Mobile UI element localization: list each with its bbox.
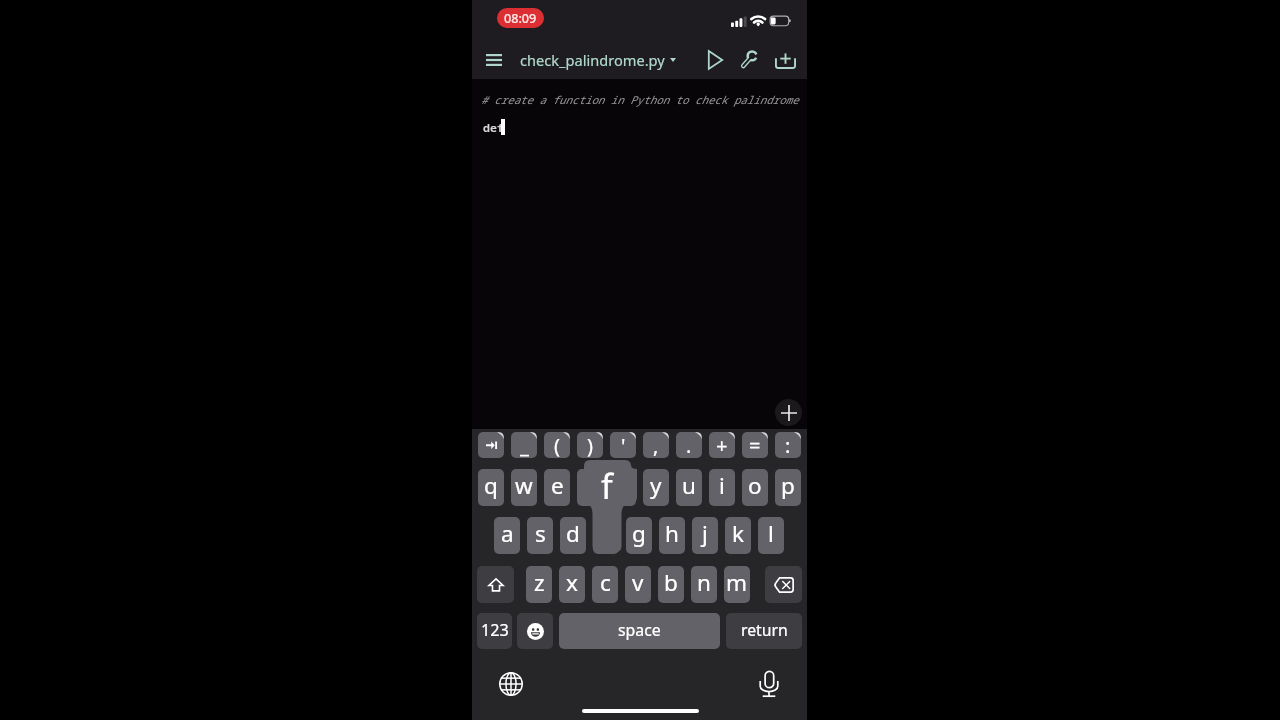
button[interactable]: :	[775, 432, 801, 458]
button[interactable]: y	[643, 469, 669, 506]
button[interactable]: space	[559, 613, 720, 649]
staticText: (	[554, 432, 560, 458]
button[interactable]: d	[560, 517, 586, 554]
button[interactable]: (	[544, 432, 570, 458]
staticText: f	[601, 463, 613, 509]
button[interactable]: f	[593, 517, 619, 554]
button[interactable]: )	[577, 432, 603, 458]
button[interactable]: =	[742, 432, 768, 458]
staticText: '	[621, 432, 626, 458]
button[interactable]: Voice input	[756, 671, 782, 697]
staticText: 08:09	[504, 10, 537, 27]
staticText: e	[551, 470, 564, 501]
button[interactable]: Tools	[735, 46, 763, 74]
staticText: c	[600, 567, 611, 598]
staticText: k	[732, 518, 745, 549]
button[interactable]: c	[592, 566, 618, 603]
staticText: i	[719, 470, 725, 501]
staticText: a	[501, 518, 514, 549]
staticText: v	[632, 567, 644, 598]
button[interactable]: Shift	[477, 566, 514, 603]
button[interactable]: a	[494, 517, 520, 554]
button[interactable]: k	[725, 517, 751, 554]
staticText: .	[686, 432, 692, 458]
staticText: n	[697, 567, 711, 598]
staticText: g	[632, 518, 646, 549]
staticText: # create a function in Python to check p…	[481, 92, 799, 107]
button[interactable]: p	[775, 469, 801, 506]
button[interactable]: x	[559, 566, 585, 603]
staticText: +	[716, 432, 728, 458]
staticText: =	[749, 432, 761, 458]
button[interactable]: ,	[643, 432, 669, 458]
button[interactable]: h	[659, 517, 685, 554]
staticText: p	[781, 470, 795, 501]
button[interactable]: t	[610, 469, 636, 506]
button[interactable]: check_palindrome.py	[520, 47, 677, 73]
staticText: l	[768, 518, 774, 549]
staticText: s	[535, 518, 546, 549]
button[interactable]: g	[626, 517, 652, 554]
button[interactable]: return	[726, 613, 802, 649]
staticText: x	[566, 567, 578, 598]
staticText: b	[664, 567, 678, 598]
button[interactable]: '	[610, 432, 636, 458]
staticText: j	[702, 518, 708, 549]
staticText: q	[484, 470, 498, 501]
button[interactable]: w	[511, 469, 537, 506]
button[interactable]: j	[692, 517, 718, 554]
button[interactable]: Change keyboard	[498, 671, 524, 697]
staticText: z	[534, 567, 545, 598]
button[interactable]: Menu	[480, 46, 508, 74]
staticText: o	[748, 470, 762, 501]
staticText: :	[785, 432, 791, 458]
button[interactable]: e	[544, 469, 570, 506]
button[interactable]: s	[527, 517, 553, 554]
staticText: def	[483, 120, 504, 136]
staticText: w	[515, 470, 533, 501]
button[interactable]: m	[724, 566, 750, 603]
button[interactable]: .	[676, 432, 702, 458]
button[interactable]: q	[478, 469, 504, 506]
button[interactable]: o	[742, 469, 768, 506]
button[interactable]: Run	[701, 46, 729, 74]
button[interactable]: b	[658, 566, 684, 603]
staticText: space	[618, 619, 661, 641]
button[interactable]: _	[511, 432, 537, 458]
button[interactable]: n	[691, 566, 717, 603]
button[interactable]: Emoji	[517, 613, 553, 649]
staticText: )	[587, 432, 593, 458]
button[interactable]: Backspace	[765, 566, 802, 603]
staticText: 123	[481, 619, 509, 641]
button[interactable]: r	[577, 469, 603, 506]
button[interactable]: u	[676, 469, 702, 506]
staticText: _	[520, 432, 529, 458]
staticText: return	[741, 619, 788, 641]
button[interactable]: New file	[771, 46, 799, 74]
staticText: h	[665, 518, 679, 549]
staticText: check_palindrome.py	[520, 50, 665, 70]
staticText: ,	[653, 432, 659, 458]
staticText: y	[650, 470, 662, 501]
staticText: u	[682, 470, 696, 501]
button[interactable]: l	[758, 517, 784, 554]
button[interactable]: 123	[477, 613, 512, 649]
button[interactable]: Add	[775, 399, 802, 426]
button[interactable]: v	[625, 566, 651, 603]
staticText: m	[726, 567, 748, 598]
button[interactable]: i	[709, 469, 735, 506]
button[interactable]	[478, 432, 504, 458]
staticText: d	[566, 518, 580, 549]
button[interactable]: z	[526, 566, 552, 603]
button[interactable]: +	[709, 432, 735, 458]
